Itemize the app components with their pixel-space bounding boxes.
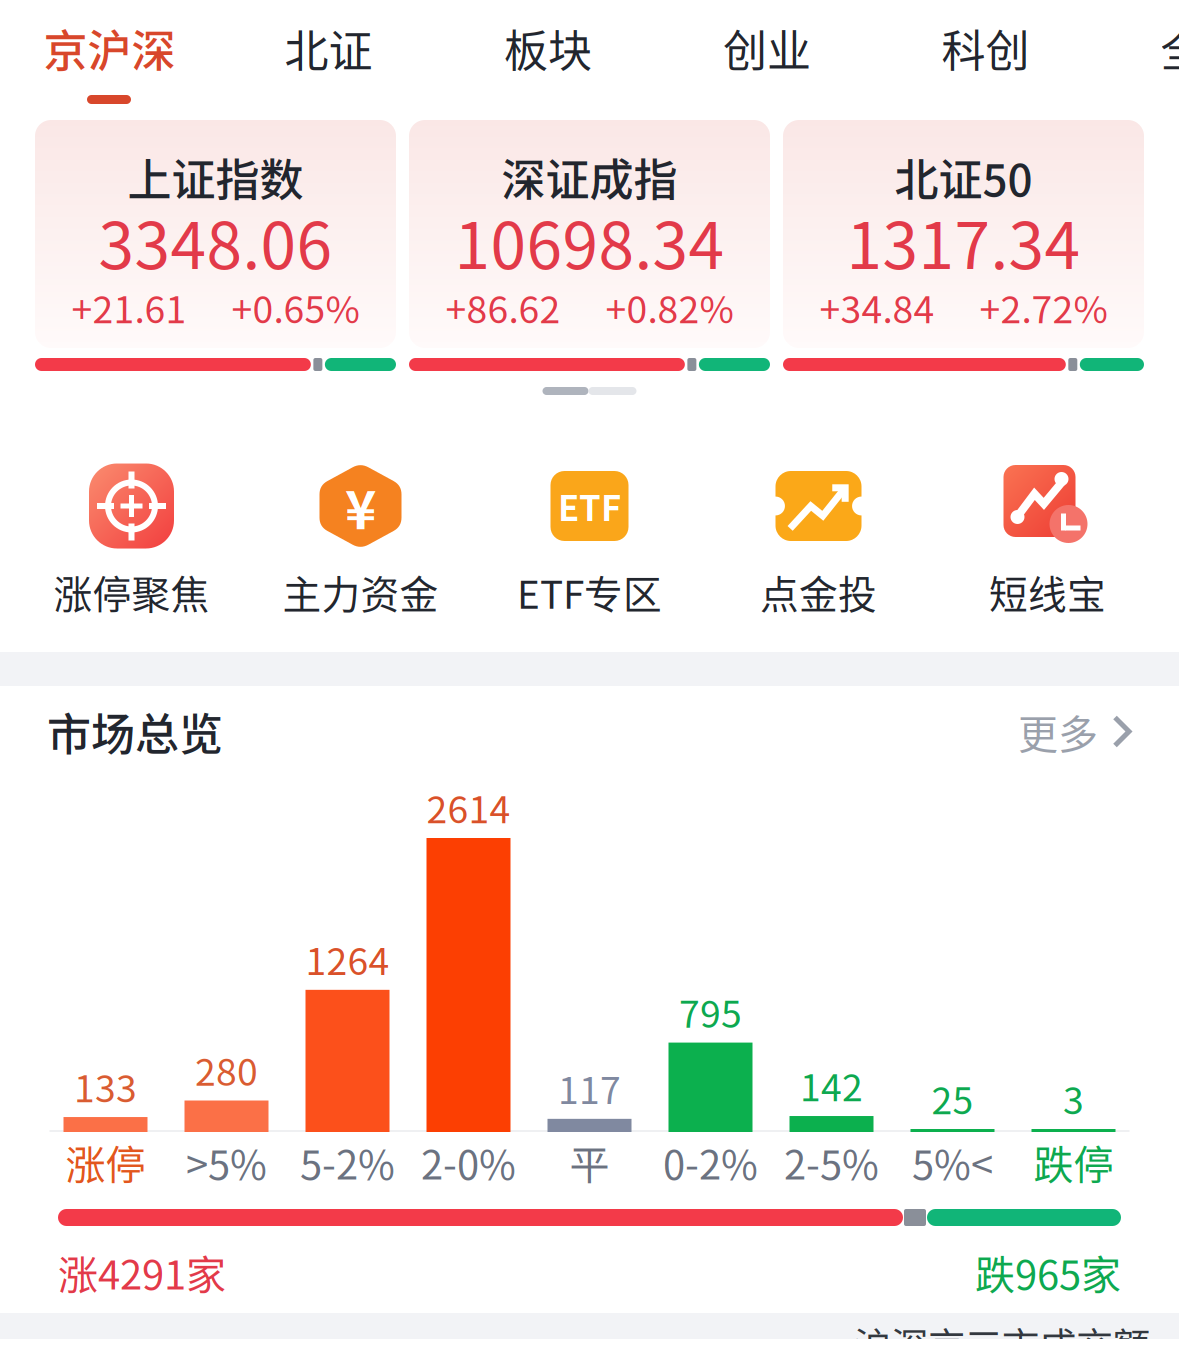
staticText: 5-2% bbox=[300, 1133, 395, 1191]
button[interactable]: 深证成指 bbox=[409, 120, 770, 371]
staticText: 北证50 bbox=[894, 145, 1032, 209]
button[interactable]: 涨停聚焦 bbox=[17, 463, 246, 614]
staticText: +0.65% bbox=[231, 280, 359, 334]
staticText: 1264 bbox=[305, 932, 389, 986]
staticText: 北证 bbox=[284, 16, 372, 80]
staticText: 跌停 bbox=[1033, 1133, 1113, 1191]
staticText: 2-5% bbox=[784, 1133, 879, 1191]
button[interactable]: 更多 bbox=[1018, 702, 1132, 760]
staticText: +0.82% bbox=[605, 280, 733, 334]
button[interactable]: 短线宝 bbox=[933, 463, 1162, 614]
button[interactable]: 科创 bbox=[876, 0, 1095, 96]
button[interactable]: 点金投 bbox=[704, 463, 933, 614]
staticText: 142 bbox=[800, 1058, 863, 1112]
staticText: 3 bbox=[1063, 1071, 1084, 1125]
staticText: 短线宝 bbox=[989, 564, 1106, 620]
staticText: 涨停 bbox=[65, 1133, 145, 1191]
staticText: 133 bbox=[74, 1059, 137, 1113]
staticText: 280 bbox=[195, 1042, 258, 1096]
staticText: 创业 bbox=[723, 16, 811, 80]
staticText: +34.84 bbox=[819, 280, 934, 334]
button[interactable]: 创业 bbox=[658, 0, 876, 96]
staticText: 沪深京三市成交额 bbox=[854, 1317, 1150, 1364]
button[interactable]: 京沪深 bbox=[0, 0, 219, 96]
staticText: 1317.34 bbox=[846, 195, 1080, 287]
staticText: 795 bbox=[679, 984, 742, 1039]
button[interactable]: 板块 bbox=[438, 0, 658, 96]
staticText: 涨4291家 bbox=[58, 1243, 226, 1301]
staticText: ¥ bbox=[345, 467, 376, 545]
staticText: 更多 bbox=[1018, 702, 1098, 760]
staticText: +2.72% bbox=[979, 280, 1107, 334]
staticText: 0-2% bbox=[663, 1133, 758, 1191]
staticText: 平 bbox=[569, 1133, 609, 1191]
staticText: 全指 bbox=[1160, 16, 1179, 80]
staticText: 117 bbox=[558, 1061, 621, 1115]
staticText: 2-0% bbox=[421, 1133, 516, 1191]
staticText: 跌965家 bbox=[975, 1243, 1121, 1301]
staticText: ETF专区 bbox=[517, 564, 662, 620]
staticText: 深证成指 bbox=[501, 145, 677, 209]
staticText: +21.61 bbox=[71, 280, 186, 334]
staticText: 市场总览 bbox=[47, 700, 223, 763]
staticText: 25 bbox=[931, 1071, 973, 1125]
button[interactable]: 北证50 bbox=[783, 120, 1144, 371]
staticText: 京沪深 bbox=[43, 16, 175, 80]
staticText: 科创 bbox=[941, 16, 1029, 80]
staticText: 板块 bbox=[504, 16, 592, 80]
button[interactable]: 全指 bbox=[1095, 0, 1179, 96]
staticText: 涨停聚焦 bbox=[53, 564, 209, 620]
staticText: 3348.06 bbox=[98, 195, 332, 287]
staticText: 主力资金 bbox=[282, 564, 438, 620]
button[interactable]: ETF bbox=[475, 463, 704, 614]
staticText: +86.62 bbox=[445, 280, 560, 334]
button[interactable]: 上证指数 bbox=[35, 120, 396, 371]
staticText: 上证指数 bbox=[127, 145, 303, 209]
button[interactable]: ¥ bbox=[246, 463, 475, 614]
staticText: ETF bbox=[558, 481, 621, 531]
staticText: >5% bbox=[186, 1133, 267, 1191]
staticText: 10698.34 bbox=[454, 195, 724, 287]
staticText: 点金投 bbox=[760, 564, 877, 620]
staticText: 5%< bbox=[912, 1133, 993, 1191]
staticText: 2614 bbox=[426, 780, 510, 834]
button[interactable]: 北证 bbox=[219, 0, 438, 96]
